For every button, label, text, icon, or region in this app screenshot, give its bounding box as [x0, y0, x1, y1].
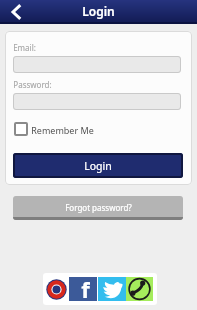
button[interactable]: [46, 279, 67, 300]
button[interactable]: [98, 277, 126, 301]
button[interactable]: Login: [13, 153, 183, 178]
button[interactable]: [126, 277, 153, 301]
staticText: Email:: [13, 42, 36, 53]
staticText: Login: [84, 159, 112, 173]
button[interactable]: [13, 56, 181, 73]
staticText: Password:: [13, 79, 52, 90]
button[interactable]: [13, 93, 181, 110]
button[interactable]: Forgot password?: [13, 196, 183, 220]
button[interactable]: [2, 0, 28, 24]
button[interactable]: Remember Me: [14, 122, 94, 136]
staticText: f: [81, 274, 90, 298]
staticText: Login: [82, 3, 115, 19]
button[interactable]: f: [69, 277, 97, 301]
staticText: Forgot password?: [65, 202, 132, 213]
staticText: Remember Me: [31, 124, 94, 136]
